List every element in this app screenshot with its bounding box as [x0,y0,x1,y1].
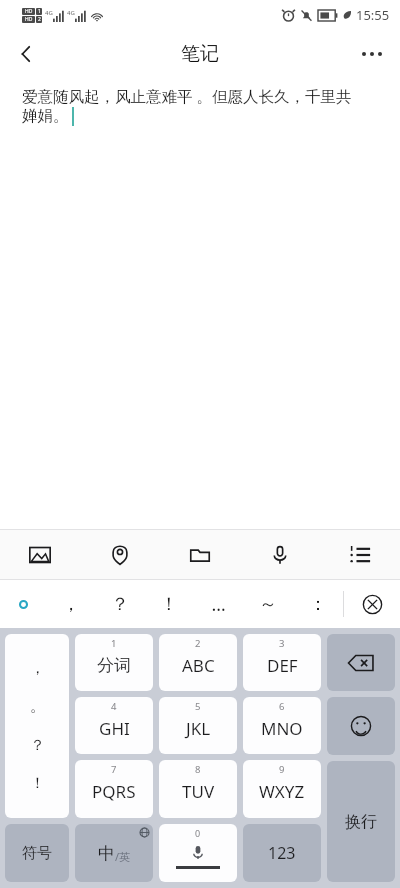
button[interactable]: 7 [75,760,153,818]
staticText: MNO [261,717,303,740]
staticText: 换行 [345,812,377,832]
staticText: 4G [67,9,75,17]
staticText: 5 [195,700,201,713]
button[interactable]: 2 [159,634,237,691]
button[interactable]: Back [6,34,46,74]
button[interactable]: Folder [160,530,240,579]
staticText: 6 [279,700,285,713]
staticText: 7 [111,763,117,776]
button[interactable]: Close keyboard [344,580,400,628]
staticText: HD [25,16,33,23]
staticText: /英 [115,849,131,864]
button[interactable]: ， [5,634,69,818]
staticText: HD [25,8,33,15]
staticText: 0 [195,827,201,839]
staticText: … [211,592,226,617]
button[interactable]: 1 [75,634,153,691]
button[interactable]: Emoji [327,697,395,755]
staticText: 婵娟。 [22,106,69,126]
button[interactable]: Insert image [0,530,80,579]
button[interactable]: 5 [159,697,237,754]
staticText: 符号 [22,844,52,863]
staticText: JKL [186,717,211,740]
staticText: ABC [182,654,215,677]
staticText: PQRS [92,780,136,803]
staticText: 3 [279,637,285,650]
button[interactable]: … [193,580,243,628]
staticText: 8 [195,763,201,776]
staticText: 15:55 [356,6,390,24]
button[interactable]: 符号 [5,824,69,882]
staticText: 4G [45,9,53,17]
staticText: ， [30,659,45,678]
staticText: 4 [111,700,117,713]
button[interactable]: 6 [243,697,321,754]
button[interactable]: 3 [243,634,321,691]
staticText: ～ [259,593,277,616]
staticText: 爱意随风起，风止意难平 。但愿人长久，千里共 [22,85,352,106]
button[interactable]: More options [352,34,392,74]
staticText: 。 [30,697,45,716]
button[interactable]: Backspace [327,634,395,691]
staticText: ？ [111,593,129,616]
staticText: ， [62,593,80,616]
button[interactable]: ？ [95,580,144,628]
button[interactable]: ～ [243,580,293,628]
staticText: DEF [267,654,298,677]
staticText: 中 [98,843,115,864]
button[interactable]: Add location [80,530,160,579]
staticText: ！ [30,774,45,793]
staticText: WXYZ [259,780,305,803]
staticText: 2 [38,16,41,23]
button[interactable]: ： [293,580,343,628]
button[interactable]: ！ [144,580,193,628]
staticText: 1 [38,8,41,15]
button[interactable]: 4 [75,697,153,754]
button[interactable]: 中 [75,824,153,882]
staticText: 9 [279,763,285,776]
staticText: 123 [268,842,296,864]
staticText: 分词 [97,655,131,676]
button[interactable]: Space, voice input [159,824,237,882]
staticText: 1 [111,637,117,650]
button[interactable]: Candidate indicator [0,580,46,628]
button[interactable]: Checklist [320,530,400,579]
button[interactable]: 换行 [327,761,395,882]
staticText: TUV [182,780,215,803]
staticText: ？ [30,736,45,755]
button[interactable]: 9 [243,760,321,818]
button[interactable]: 123 [243,824,321,882]
staticText: GHI [99,717,130,740]
staticText: ！ [160,593,178,616]
staticText: 2 [195,637,201,650]
button[interactable]: 8 [159,760,237,818]
staticText: ： [309,593,327,616]
button[interactable]: Voice input [240,530,320,579]
button[interactable]: ， [46,580,95,628]
staticText: 笔记 [181,42,219,66]
